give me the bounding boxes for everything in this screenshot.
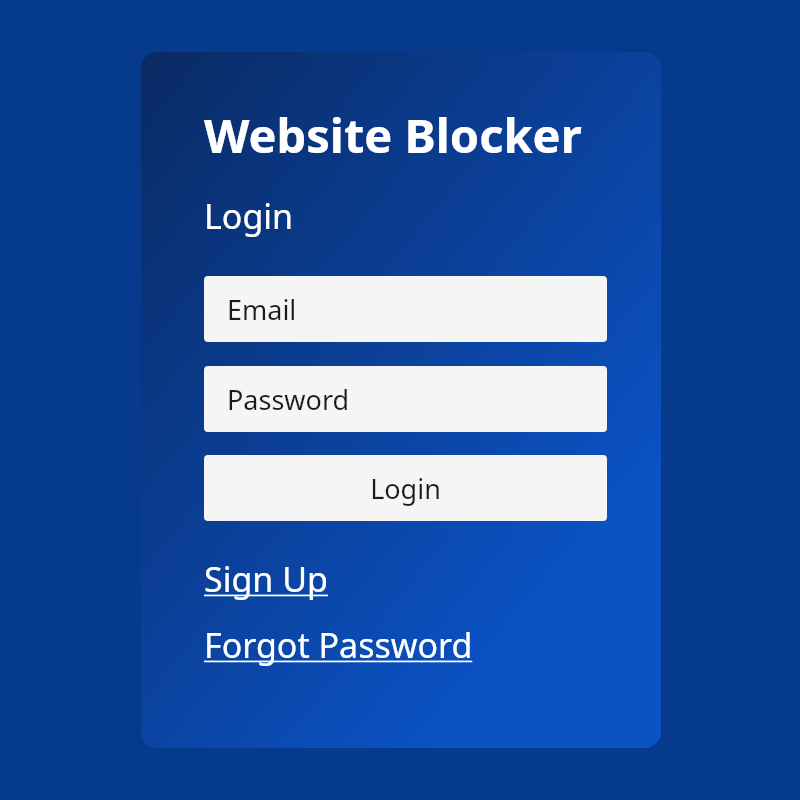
staticText: Sign Up [204, 556, 328, 602]
staticText: Password [227, 381, 350, 418]
button[interactable]: Login [204, 455, 607, 521]
staticText: Email [227, 291, 297, 328]
staticText: Website Blocker [204, 103, 582, 167]
staticText: Login [370, 470, 441, 507]
staticText: Forgot Password [204, 622, 473, 668]
button[interactable]: Password [204, 366, 607, 432]
button[interactable]: Email [204, 276, 607, 342]
button[interactable]: Sign Up [204, 556, 328, 602]
button[interactable]: Forgot Password [204, 622, 473, 668]
staticText: Login [204, 193, 294, 239]
